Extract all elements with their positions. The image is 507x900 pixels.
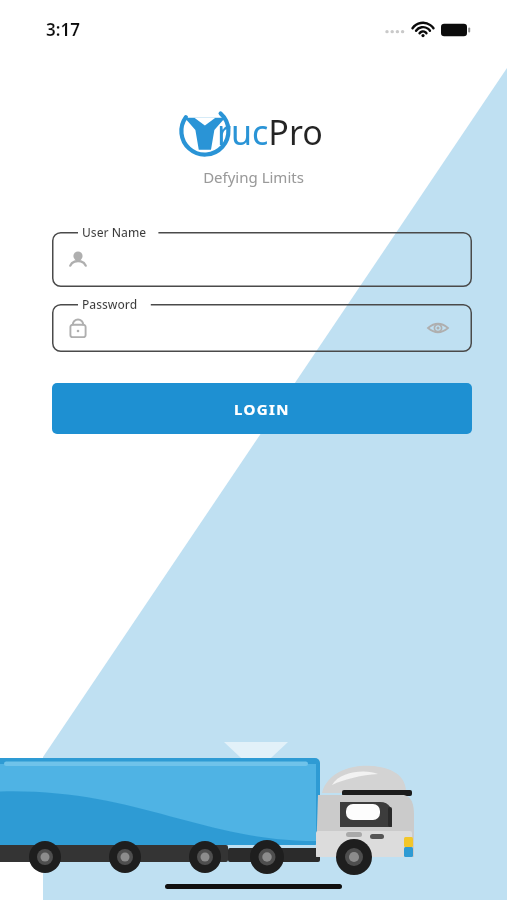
staticText: 3:17: [46, 18, 80, 41]
staticText: rucPro: [217, 109, 323, 155]
staticText: Defying Limits: [203, 167, 304, 187]
button[interactable]: Password input: [52, 304, 472, 352]
staticText: LOGIN: [234, 399, 290, 419]
staticText: User Name: [82, 224, 147, 240]
staticText: Password: [82, 296, 138, 312]
button[interactable]: Show password: [424, 314, 452, 342]
button[interactable]: LOGIN: [52, 383, 472, 434]
button[interactable]: User Name input: [52, 232, 472, 287]
